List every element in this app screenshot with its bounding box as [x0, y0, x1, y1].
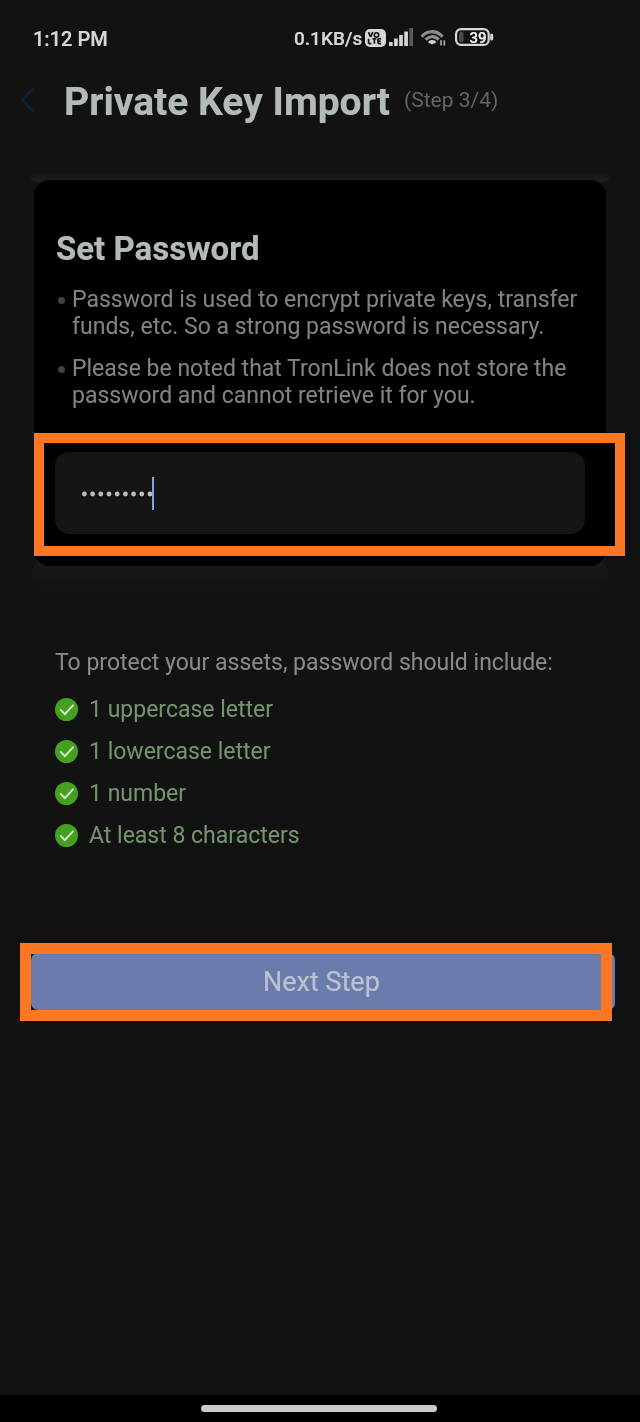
- staticText: 1 lowercase letter: [89, 738, 271, 765]
- staticText: 39: [465, 29, 491, 47]
- staticText: Please be noted that TronLink does not s…: [72, 355, 586, 409]
- staticText: Next Step: [263, 966, 380, 998]
- button[interactable]: [55, 452, 585, 534]
- button[interactable]: Next Step: [31, 953, 615, 1010]
- staticText: At least 8 characters: [89, 822, 300, 849]
- staticText: To protect your assets, password should …: [55, 649, 553, 676]
- staticText: Set Password: [56, 229, 260, 268]
- staticText: 1 number: [89, 780, 187, 807]
- button[interactable]: 1 number: [55, 772, 187, 814]
- staticText: 1 uppercase letter: [89, 696, 274, 723]
- button[interactable]: [55, 452, 585, 534]
- button[interactable]: Back: [6, 79, 48, 121]
- button[interactable]: 1 lowercase letter: [55, 730, 271, 772]
- staticText: Password is used to encrypt private keys…: [72, 286, 586, 340]
- button[interactable]: At least 8 characters: [55, 814, 300, 856]
- button[interactable]: 1 uppercase letter: [55, 688, 274, 730]
- staticText: (Step 3/4): [404, 88, 499, 113]
- staticText: Private Key Import: [64, 79, 391, 125]
- staticText: 1:12 PM: [33, 27, 108, 50]
- staticText: 0.1KB/s: [294, 27, 363, 49]
